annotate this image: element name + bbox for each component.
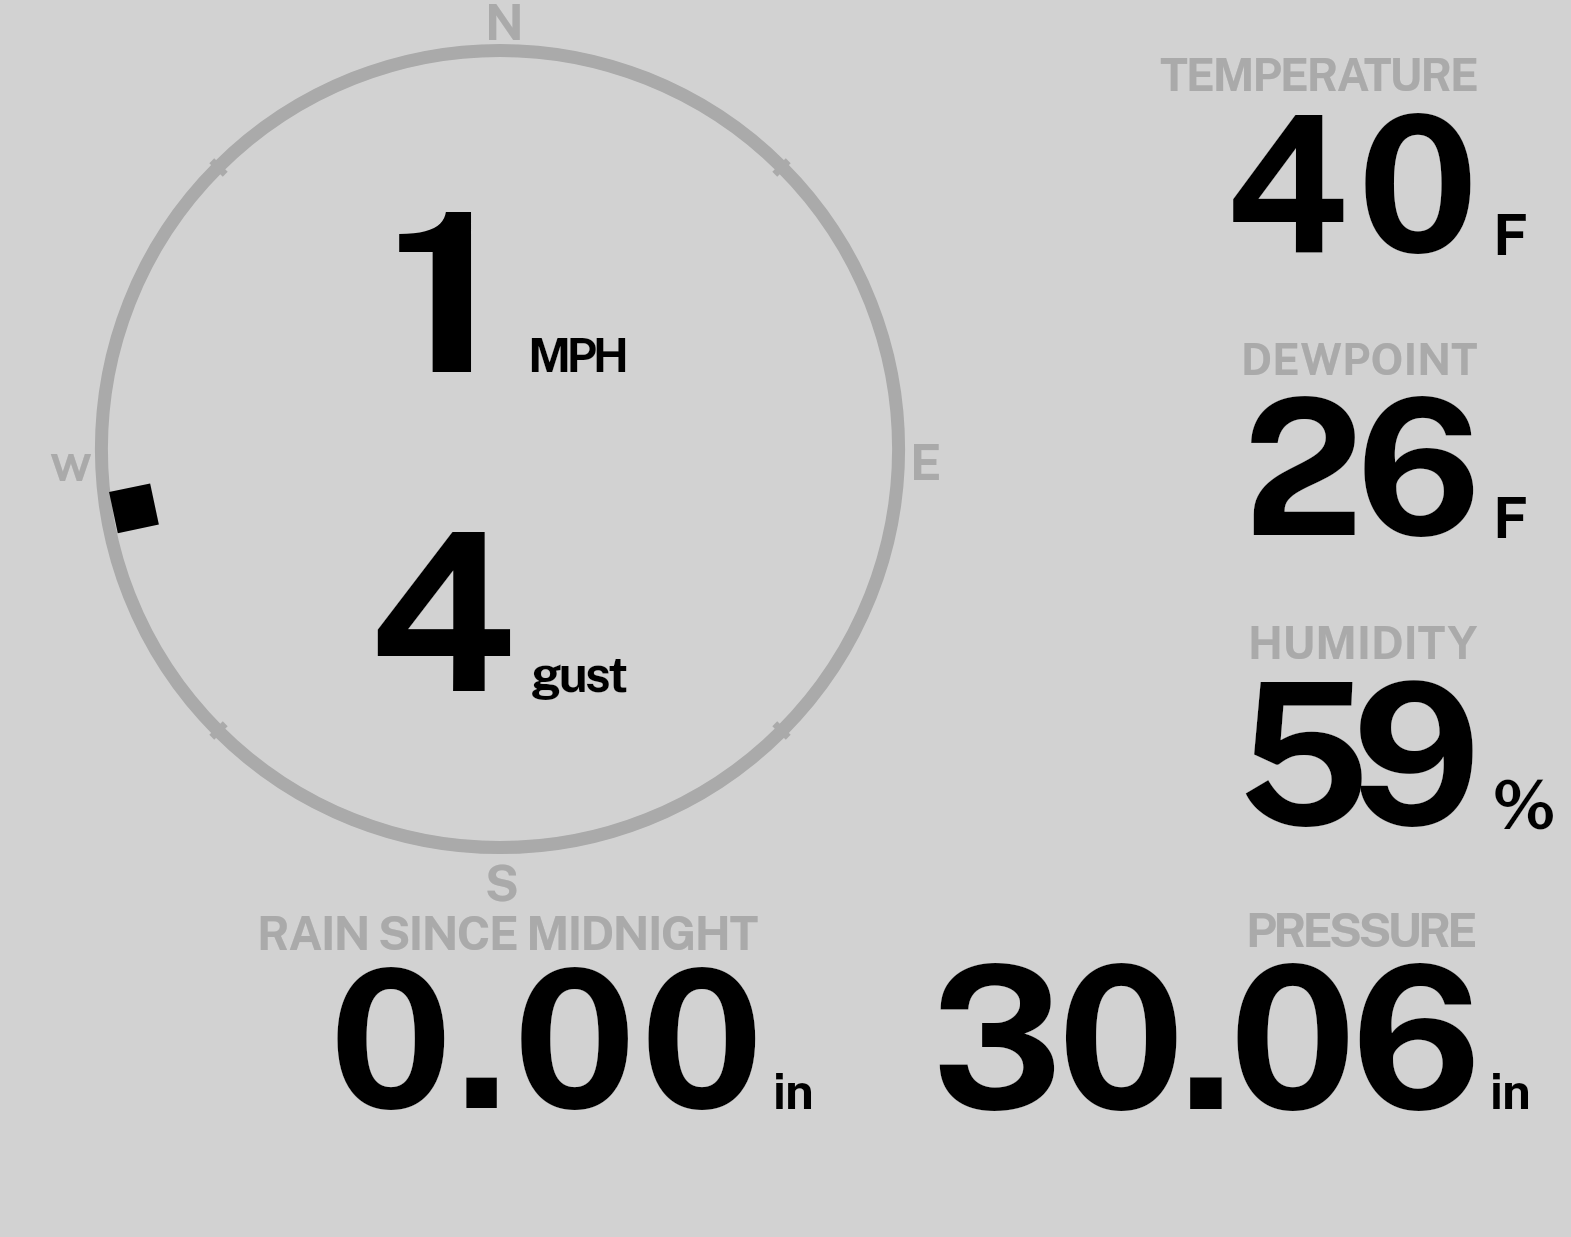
staticText: 40 bbox=[1225, 73, 1488, 295]
staticText: MPH bbox=[528, 327, 625, 382]
staticText: 59 bbox=[1237, 637, 1462, 869]
button[interactable]: Rain since midnight 0.00 inches bbox=[250, 900, 830, 1125]
staticText: RAIN SINCE MIDNIGHT bbox=[257, 905, 757, 960]
button[interactable]: Pressure 30.06 inches bbox=[920, 900, 1540, 1125]
button[interactable]: Temperature 40 degrees Fahrenheit bbox=[1140, 45, 1540, 275]
staticText: 30.06 bbox=[931, 921, 1477, 1154]
button[interactable]: Wind 1 MPH, gusting 4, from the west bbox=[95, 45, 905, 855]
staticText: TEMPERATURE bbox=[1160, 48, 1477, 101]
staticText: E bbox=[910, 433, 942, 491]
staticText: W bbox=[50, 444, 93, 489]
staticText: gust bbox=[531, 646, 626, 703]
staticText: HUMIDITY bbox=[1248, 616, 1478, 669]
staticText: F bbox=[1493, 483, 1529, 550]
staticText: PRESSURE bbox=[1246, 902, 1474, 958]
button[interactable]: Dewpoint 26 degrees Fahrenheit bbox=[1140, 330, 1540, 560]
staticText: 1 bbox=[388, 162, 499, 422]
staticText: in bbox=[773, 1063, 813, 1120]
staticText: 26 bbox=[1243, 354, 1474, 577]
staticText: DEWPOINT bbox=[1241, 334, 1478, 385]
staticText: F bbox=[1493, 200, 1529, 267]
staticText: 4 bbox=[368, 482, 517, 740]
staticText: % bbox=[1492, 764, 1557, 845]
staticText: in bbox=[1490, 1063, 1530, 1120]
button[interactable]: Humidity 59 percent bbox=[1140, 612, 1540, 842]
staticText: S bbox=[485, 855, 519, 912]
staticText: 0.00 bbox=[329, 926, 768, 1151]
staticText: N bbox=[485, 0, 524, 51]
